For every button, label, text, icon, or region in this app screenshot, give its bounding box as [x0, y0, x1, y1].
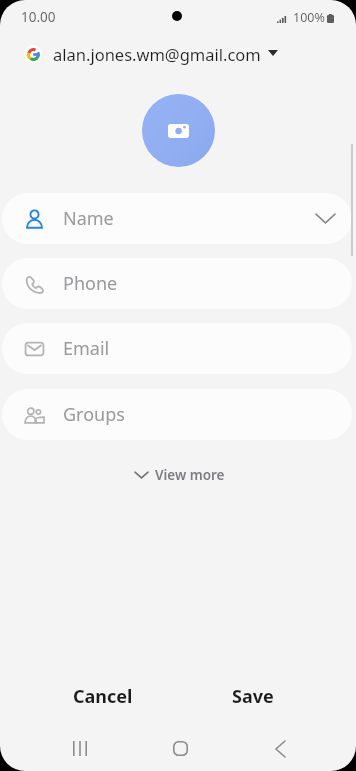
button[interactable]: Name	[2, 193, 352, 244]
button[interactable]: Back	[256, 726, 304, 771]
staticText: Save	[232, 684, 274, 709]
button[interactable]: Email	[2, 323, 352, 374]
staticText: View more	[155, 466, 225, 484]
staticText: Name	[63, 206, 114, 231]
staticText: 100%	[293, 9, 325, 26]
staticText: Cancel	[73, 684, 133, 709]
button[interactable]: Groups	[2, 389, 352, 440]
button[interactable]: alan.jones.wm@gmail.com	[0, 34, 356, 74]
staticText: 10.00	[21, 8, 56, 26]
button[interactable]: Save	[213, 678, 293, 714]
button[interactable]: View more	[129, 461, 231, 489]
button[interactable]: Add photo	[142, 94, 215, 167]
staticText: Groups	[63, 402, 125, 427]
button[interactable]: Recent apps	[56, 726, 104, 771]
staticText: alan.jones.wm@gmail.com	[53, 43, 261, 65]
button[interactable]: Cancel	[55, 678, 151, 714]
staticText: Phone	[63, 271, 118, 296]
button[interactable]: Phone	[2, 258, 352, 309]
staticText: Email	[63, 336, 110, 361]
button[interactable]: Home	[156, 726, 204, 771]
